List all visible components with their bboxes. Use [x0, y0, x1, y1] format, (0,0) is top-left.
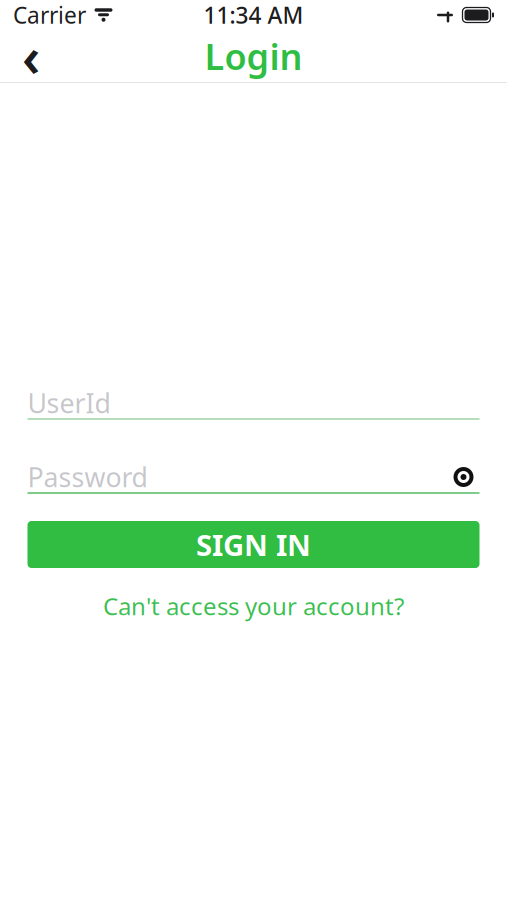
- button[interactable]: UserId: [27, 388, 479, 420]
- button[interactable]: Can't access your account?: [27, 593, 479, 619]
- staticText: ‹: [22, 21, 40, 91]
- staticText: Carrier: [13, 0, 86, 30]
- staticText: 11:34 AM: [203, 0, 303, 30]
- button[interactable]: Back: [0, 30, 62, 82]
- button[interactable]: SIGN IN: [27, 521, 479, 568]
- button[interactable]: Show password: [447, 462, 479, 492]
- staticText: SIGN IN: [196, 525, 311, 564]
- staticText: Can't access your account?: [103, 590, 404, 622]
- staticText: UserId: [27, 385, 110, 421]
- staticText: Login: [204, 32, 302, 80]
- staticText: Password: [27, 459, 147, 495]
- button[interactable]: Password: [27, 462, 479, 494]
